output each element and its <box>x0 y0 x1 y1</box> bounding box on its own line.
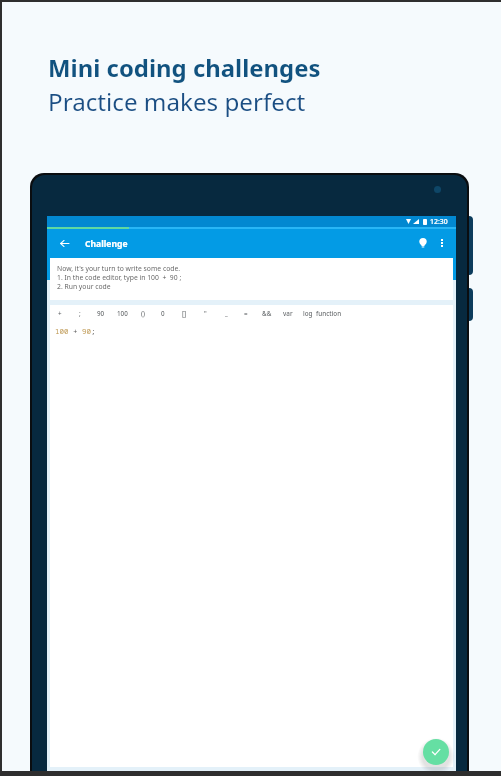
staticText: = <box>244 309 248 318</box>
staticText: Challenge <box>85 238 128 250</box>
button[interactable]: + <box>46 303 74 323</box>
button[interactable]: 100 <box>108 303 136 323</box>
button[interactable]: Back <box>56 235 72 251</box>
staticText: 100 + 90; <box>55 326 96 336</box>
button[interactable]: [] <box>170 303 198 323</box>
staticText: [] <box>182 309 187 318</box>
button[interactable]: More options <box>434 235 450 251</box>
staticText: function <box>316 309 342 318</box>
staticText: log <box>303 309 313 318</box>
staticText: 0 <box>161 309 165 318</box>
staticText: Now, it's your turn to write some code. <box>57 264 181 273</box>
button[interactable]: function <box>315 303 343 323</box>
staticText: 2. Run your code <box>57 282 111 291</box>
button[interactable]: Hint <box>415 235 431 251</box>
button[interactable]: () <box>129 303 157 323</box>
button[interactable]: 0 <box>149 303 177 323</box>
staticText: _ <box>225 309 228 318</box>
button[interactable]: var <box>274 303 302 323</box>
staticText: () <box>141 309 145 318</box>
button[interactable]: 90 <box>87 303 115 323</box>
staticText: 100 <box>117 309 128 318</box>
button[interactable]: log <box>294 303 322 323</box>
staticText: 90 <box>97 309 105 318</box>
staticText: && <box>262 309 272 318</box>
button[interactable]: && <box>253 303 281 323</box>
button[interactable]: Run code <box>423 739 449 765</box>
staticText: 1. In the code editor, type in 100 + 90 … <box>57 273 182 282</box>
button[interactable]: = <box>232 303 260 323</box>
staticText: 12:30 <box>430 217 448 226</box>
staticText: ; <box>79 309 81 318</box>
button[interactable]: " <box>191 303 219 323</box>
button[interactable]: _ <box>212 303 240 323</box>
button[interactable]: ; <box>66 303 94 323</box>
staticText: " <box>204 309 207 318</box>
staticText: + <box>58 309 62 318</box>
staticText: Practice makes perfect <box>48 85 306 118</box>
staticText: Mini coding challenges <box>48 51 321 84</box>
staticText: var <box>283 309 293 318</box>
